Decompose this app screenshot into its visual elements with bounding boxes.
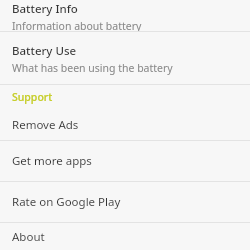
staticText: Rate on Google Play bbox=[12, 194, 121, 210]
staticText: Remove Ads bbox=[12, 117, 79, 133]
staticText: Information about battery bbox=[12, 19, 142, 31]
staticText: Battery Use bbox=[12, 43, 77, 59]
button[interactable]: About bbox=[0, 223, 250, 250]
button[interactable]: Battery Use bbox=[0, 32, 250, 84]
staticText: What has been using the battery bbox=[12, 61, 173, 75]
button[interactable]: Get more apps bbox=[0, 141, 250, 181]
button[interactable]: Battery Info bbox=[0, 0, 250, 31]
staticText: Battery Info bbox=[12, 1, 78, 17]
button[interactable]: Rate on Google Play bbox=[0, 182, 250, 222]
staticText: About bbox=[12, 229, 45, 245]
staticText: Get more apps bbox=[12, 153, 92, 169]
button[interactable]: Remove Ads bbox=[0, 109, 250, 140]
staticText: Support bbox=[12, 90, 53, 104]
